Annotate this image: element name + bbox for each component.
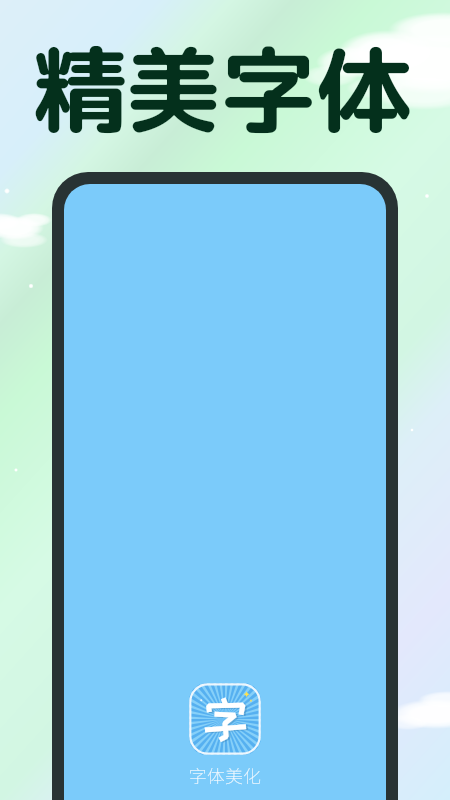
staticText: 字 (202, 693, 249, 744)
other: 字体美化 (189, 683, 261, 755)
staticText: 精美字体 (31, 23, 412, 156)
staticText: 字 (204, 694, 251, 745)
button[interactable]: 字体美化 (189, 683, 261, 788)
staticText: 字体美化 (189, 762, 261, 788)
